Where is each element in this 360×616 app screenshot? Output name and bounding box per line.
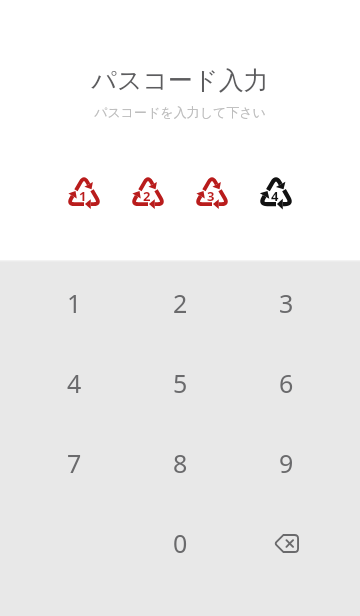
button[interactable]: 2: [127, 263, 233, 343]
staticText: 6: [279, 366, 294, 400]
staticText: 4: [67, 366, 82, 400]
button[interactable]: 1: [21, 263, 127, 343]
staticText: 4: [271, 187, 279, 205]
other: Passcode digit 3: [180, 176, 244, 216]
staticText: パスコード入力: [0, 65, 360, 96]
staticText: 5: [173, 366, 188, 400]
staticText: 8: [173, 446, 188, 480]
button[interactable]: Backspace: [233, 503, 339, 583]
other: Backspace: [269, 526, 303, 560]
staticText: 1: [79, 187, 87, 205]
button[interactable]: 0: [127, 503, 233, 583]
staticText: 0: [173, 526, 188, 560]
button[interactable]: 3: [233, 263, 339, 343]
staticText: 3: [279, 286, 294, 320]
other: Passcode digit 1: [52, 176, 116, 216]
other: Passcode digit 4: [244, 176, 308, 216]
button[interactable]: 8: [127, 423, 233, 503]
staticText: 9: [279, 446, 294, 480]
button[interactable]: 6: [233, 343, 339, 423]
other: Passcode digit 2: [116, 176, 180, 216]
button[interactable]: 4: [21, 343, 127, 423]
staticText: 7: [67, 446, 82, 480]
staticText: 2: [173, 286, 188, 320]
staticText: パスコードを入力して下さい: [0, 104, 360, 120]
staticText: 3: [207, 187, 215, 205]
button[interactable]: 5: [127, 343, 233, 423]
button[interactable]: 9: [233, 423, 339, 503]
staticText: 1: [67, 286, 82, 320]
staticText: 2: [143, 187, 151, 205]
button[interactable]: 7: [21, 423, 127, 503]
